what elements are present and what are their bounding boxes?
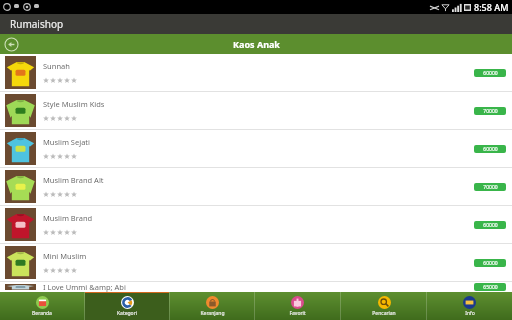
button[interactable]: Pencarian: [341, 292, 426, 320]
button[interactable]: I Love Ummi &amp; Abi: [0, 282, 512, 292]
button[interactable]: Keranjang: [170, 292, 254, 320]
staticText: Kaos Anak: [233, 38, 280, 50]
button[interactable]: 65000: [474, 283, 506, 291]
staticText: Mini Muslim: [43, 251, 87, 261]
staticText: Style Muslim Kids: [43, 99, 105, 109]
button[interactable]: Sunnah: [0, 54, 512, 92]
button[interactable]: 60000: [474, 259, 506, 267]
button[interactable]: Style Muslim Kids: [0, 92, 512, 130]
staticText: 70000: [483, 108, 498, 115]
button[interactable]: 60000: [474, 221, 506, 229]
staticText: Sunnah: [43, 61, 70, 71]
button[interactable]: Beranda: [0, 292, 84, 320]
button[interactable]: Favorit: [255, 292, 340, 320]
staticText: Pencarian: [372, 310, 396, 317]
staticText: Favorit: [289, 310, 306, 317]
staticText: 60000: [483, 260, 498, 267]
staticText: 70000: [483, 184, 498, 191]
button[interactable]: Muslim Brand Alt: [0, 168, 512, 206]
staticText: 60000: [483, 222, 498, 229]
staticText: Muslim Brand: [43, 213, 93, 223]
button[interactable]: 70000: [474, 183, 506, 191]
staticText: Muslim Brand Alt: [43, 175, 104, 185]
staticText: Info: [465, 310, 475, 317]
button[interactable]: Info: [427, 292, 512, 320]
button[interactable]: Kategori: [85, 292, 169, 320]
staticText: I Love Ummi &amp; Abi: [43, 282, 126, 292]
button[interactable]: Muslim Sejati: [0, 130, 512, 168]
staticText: 60000: [483, 146, 498, 153]
staticText: 8:58 AM: [474, 1, 509, 13]
staticText: 60000: [483, 70, 498, 77]
button[interactable]: Back: [4, 37, 19, 52]
button[interactable]: 60000: [474, 69, 506, 77]
staticText: 65000: [483, 284, 498, 291]
button[interactable]: 60000: [474, 145, 506, 153]
button[interactable]: Back: [0, 34, 512, 54]
button[interactable]: Mini Muslim: [0, 244, 512, 282]
button[interactable]: 70000: [474, 107, 506, 115]
staticText: Beranda: [32, 310, 52, 317]
button[interactable]: Muslim Brand: [0, 206, 512, 244]
staticText: Rumaishop: [10, 17, 64, 31]
staticText: Kategori: [117, 310, 137, 317]
staticText: Keranjang: [200, 310, 225, 317]
staticText: Muslim Sejati: [43, 137, 90, 147]
